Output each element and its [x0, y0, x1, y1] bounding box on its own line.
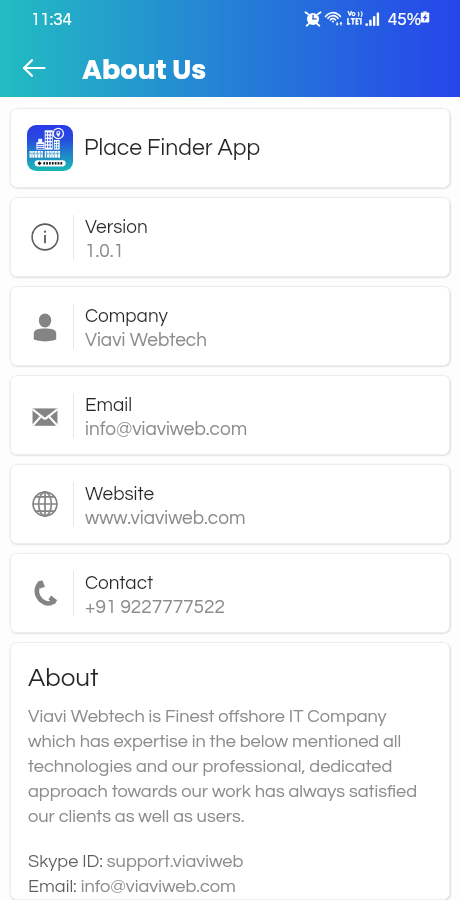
- staticText: 11:34: [31, 11, 72, 29]
- button[interactable]: Back: [14, 48, 54, 88]
- button[interactable]: Email: [10, 375, 450, 455]
- staticText: www.viaviweb.com: [85, 508, 246, 528]
- button[interactable]: Website: [10, 464, 450, 544]
- staticText: Version: [85, 217, 148, 237]
- button[interactable]: Contact: [10, 553, 450, 633]
- staticText: About Us: [82, 51, 207, 89]
- staticText: About: [28, 665, 99, 692]
- staticText: Website: [85, 484, 155, 504]
- staticText: Skype ID: support.viaviweb Email: info@v…: [28, 852, 244, 896]
- button[interactable]: Company: [10, 286, 450, 366]
- staticText: Contact: [85, 573, 154, 593]
- staticText: 45%: [388, 11, 422, 29]
- staticText: Viavi Webtech: [85, 330, 207, 350]
- staticText: Place Finder App: [84, 136, 261, 160]
- staticText: Viavi Webtech is Finest offshore IT Comp…: [28, 707, 428, 826]
- staticText: +91 9227777522: [85, 597, 225, 617]
- staticText: Company: [85, 306, 168, 326]
- button[interactable]: Version: [10, 197, 450, 277]
- staticText: info@viaviweb.com: [85, 419, 248, 439]
- button[interactable]: Place Finder App: [10, 108, 450, 188]
- staticText: 1.0.1: [85, 241, 125, 261]
- staticText: Email: [85, 395, 133, 415]
